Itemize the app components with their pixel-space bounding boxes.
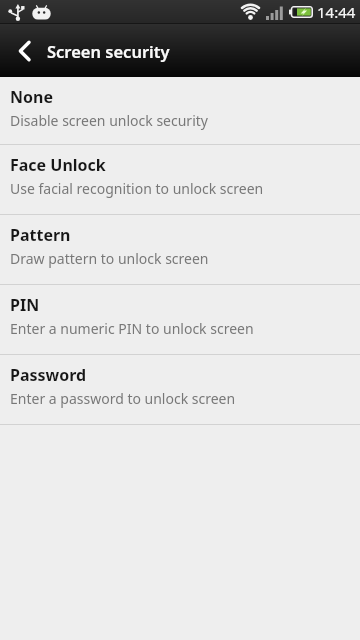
- staticText: Use facial recognition to unlock screen: [10, 179, 264, 198]
- staticText: Disable screen unlock security: [10, 111, 208, 130]
- button[interactable]: PIN: [0, 285, 360, 355]
- staticText: PIN: [10, 294, 40, 316]
- button[interactable]: Pattern: [0, 215, 360, 285]
- staticText: 14:44: [317, 2, 356, 22]
- staticText: Password: [10, 364, 87, 386]
- staticText: Screen security: [47, 40, 170, 62]
- staticText: Pattern: [10, 224, 71, 246]
- button[interactable]: Password: [0, 355, 360, 425]
- button[interactable]: Screen security: [0, 24, 360, 77]
- staticText: None: [10, 86, 53, 108]
- staticText: Face Unlock: [10, 154, 106, 176]
- staticText: Enter a password to unlock screen: [10, 389, 236, 408]
- button[interactable]: Face Unlock: [0, 145, 360, 215]
- staticText: Draw pattern to unlock screen: [10, 249, 209, 268]
- button[interactable]: None: [0, 77, 360, 145]
- staticText: Enter a numeric PIN to unlock screen: [10, 319, 254, 338]
